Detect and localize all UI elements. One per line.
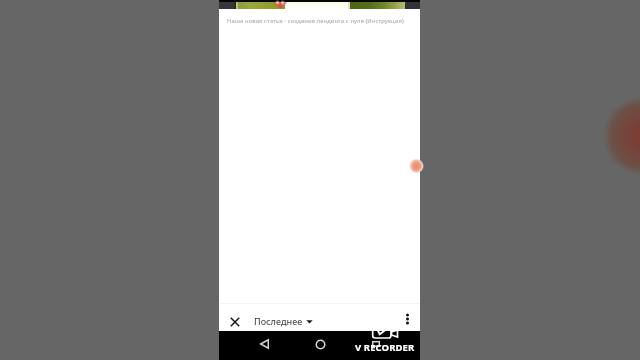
button[interactable]: Recent apps xyxy=(364,332,388,356)
button[interactable]: Close xyxy=(224,311,246,333)
button[interactable]: Back xyxy=(252,332,276,356)
staticText: Последнее xyxy=(254,315,303,327)
staticText: V RECORDER xyxy=(355,341,415,354)
button[interactable]: Home xyxy=(308,332,332,356)
button[interactable]: More options xyxy=(396,307,419,330)
staticText: Наша новая статья - создание лендинга с … xyxy=(227,17,404,25)
button[interactable]: Последнее xyxy=(252,313,315,329)
